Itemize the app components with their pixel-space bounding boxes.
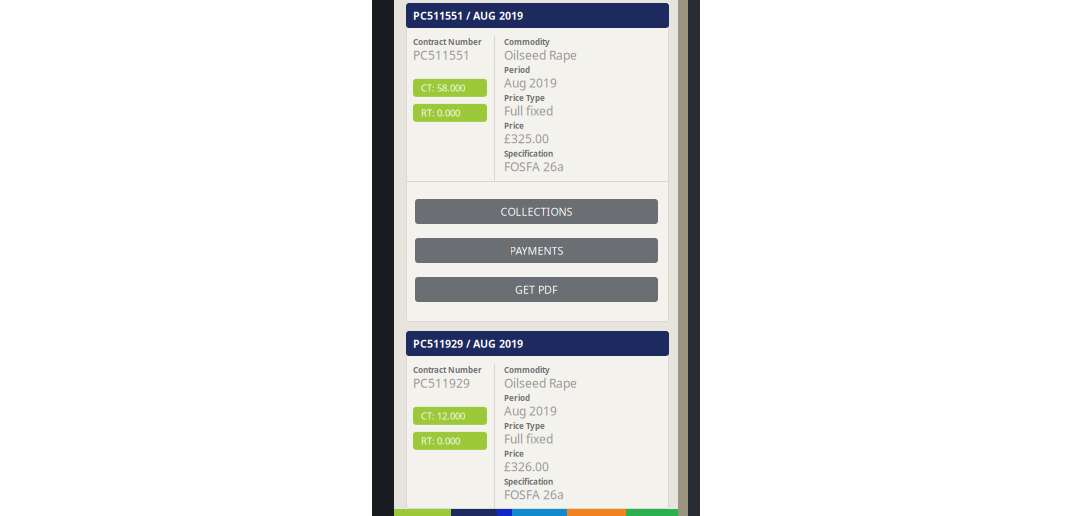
staticText: Period [504,393,530,403]
staticText: Contract Number [413,37,482,47]
staticText: FOSFA 26a [504,159,564,174]
staticText: Price [504,120,524,131]
staticText: PC511551 [413,47,470,63]
staticText: PC511929 [413,375,470,391]
staticText: £326.00 [504,459,549,475]
staticText: Price [504,448,524,459]
staticText: Specification [504,476,553,487]
staticText: Full fixed [504,431,553,447]
staticText: Price Type [504,420,545,431]
staticText: Commodity [504,365,550,375]
staticText: RT: 0.000 [421,107,460,119]
staticText: Aug 2019 [504,403,557,419]
staticText: PC511929 / AUG 2019 [413,336,523,351]
staticText: PC511551 / AUG 2019 [413,8,523,23]
button[interactable]: PAYMENTS [415,238,658,263]
staticText: Oilseed Rape [504,47,577,63]
staticText: COLLECTIONS [500,204,572,219]
staticText: Price Type [504,92,545,103]
staticText: Full fixed [504,103,553,119]
staticText: GET PDF [515,282,558,297]
staticText: Contract Number [413,365,482,375]
staticText: CT: 58.000 [421,82,465,94]
staticText: £325.00 [504,131,549,147]
staticText: Aug 2019 [504,75,557,91]
button[interactable]: COLLECTIONS [415,199,658,224]
staticText: Commodity [504,37,550,47]
button[interactable]: PC511551 / AUG 2019 [406,3,669,28]
staticText: CT: 12.000 [421,410,465,422]
staticText: RT: 0.000 [421,435,460,447]
button[interactable]: PC511929 / AUG 2019 [406,331,669,356]
staticText: Period [504,65,530,75]
staticText: Oilseed Rape [504,375,577,391]
staticText: FOSFA 26a [504,487,564,502]
staticText: Specification [504,148,553,159]
button[interactable]: GET PDF [415,277,658,302]
staticText: PAYMENTS [509,243,563,258]
